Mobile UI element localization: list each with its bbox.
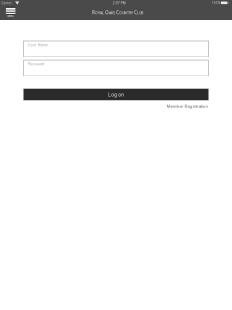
staticText: ROYAL OAKS COUNTRY CLUB [92,10,143,16]
staticText: User Name [28,42,48,47]
staticText: Carrier [2,1,12,5]
button[interactable]: Menu [6,7,15,17]
staticText: 2:07 PM [113,1,126,5]
staticText: Log on [108,91,124,98]
staticText: Password [28,61,44,66]
staticText: Member Registration [166,103,208,109]
button[interactable]: Member Registration [23,102,208,110]
staticText: 100% [212,1,220,5]
staticText: MENU [7,14,14,18]
button[interactable]: Log on [23,89,208,100]
